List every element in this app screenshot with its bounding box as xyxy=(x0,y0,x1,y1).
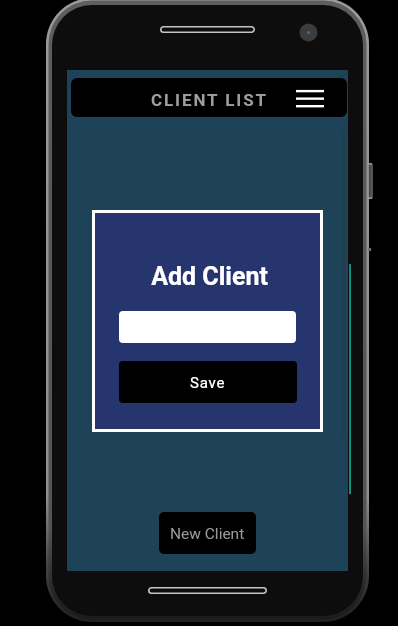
button[interactable]: New Client xyxy=(159,512,256,554)
staticText: CLIENT LIST xyxy=(151,90,268,110)
staticText: Add Client xyxy=(97,262,322,291)
button[interactable]: CLIENT LIST xyxy=(71,78,347,117)
button[interactable] xyxy=(119,311,296,343)
button[interactable]: Open navigation menu xyxy=(290,79,330,117)
staticText: New Client xyxy=(170,525,245,543)
button[interactable]: Save xyxy=(119,361,297,403)
staticText: Save xyxy=(190,374,226,392)
